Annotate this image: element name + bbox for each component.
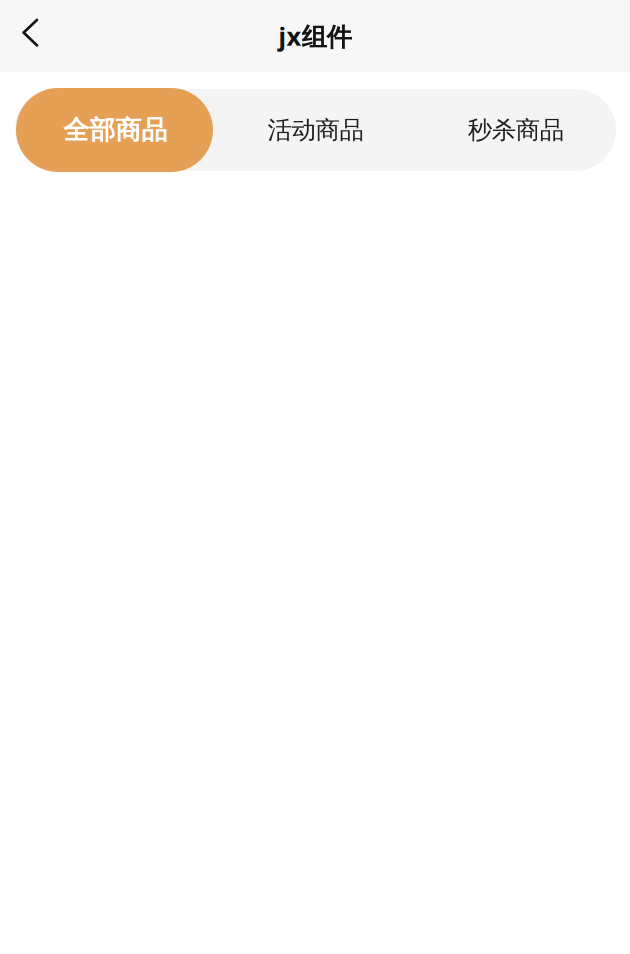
button[interactable]: Back: [0, 14, 52, 58]
button[interactable]: 活动商品: [215, 88, 416, 172]
button[interactable]: 全部商品: [15, 88, 215, 172]
staticText: 全部商品: [63, 114, 167, 146]
button[interactable]: 秒杀商品: [416, 88, 616, 172]
staticText: 秒杀商品: [468, 115, 564, 145]
staticText: 活动商品: [267, 115, 363, 145]
staticText: jx组件: [278, 19, 351, 53]
